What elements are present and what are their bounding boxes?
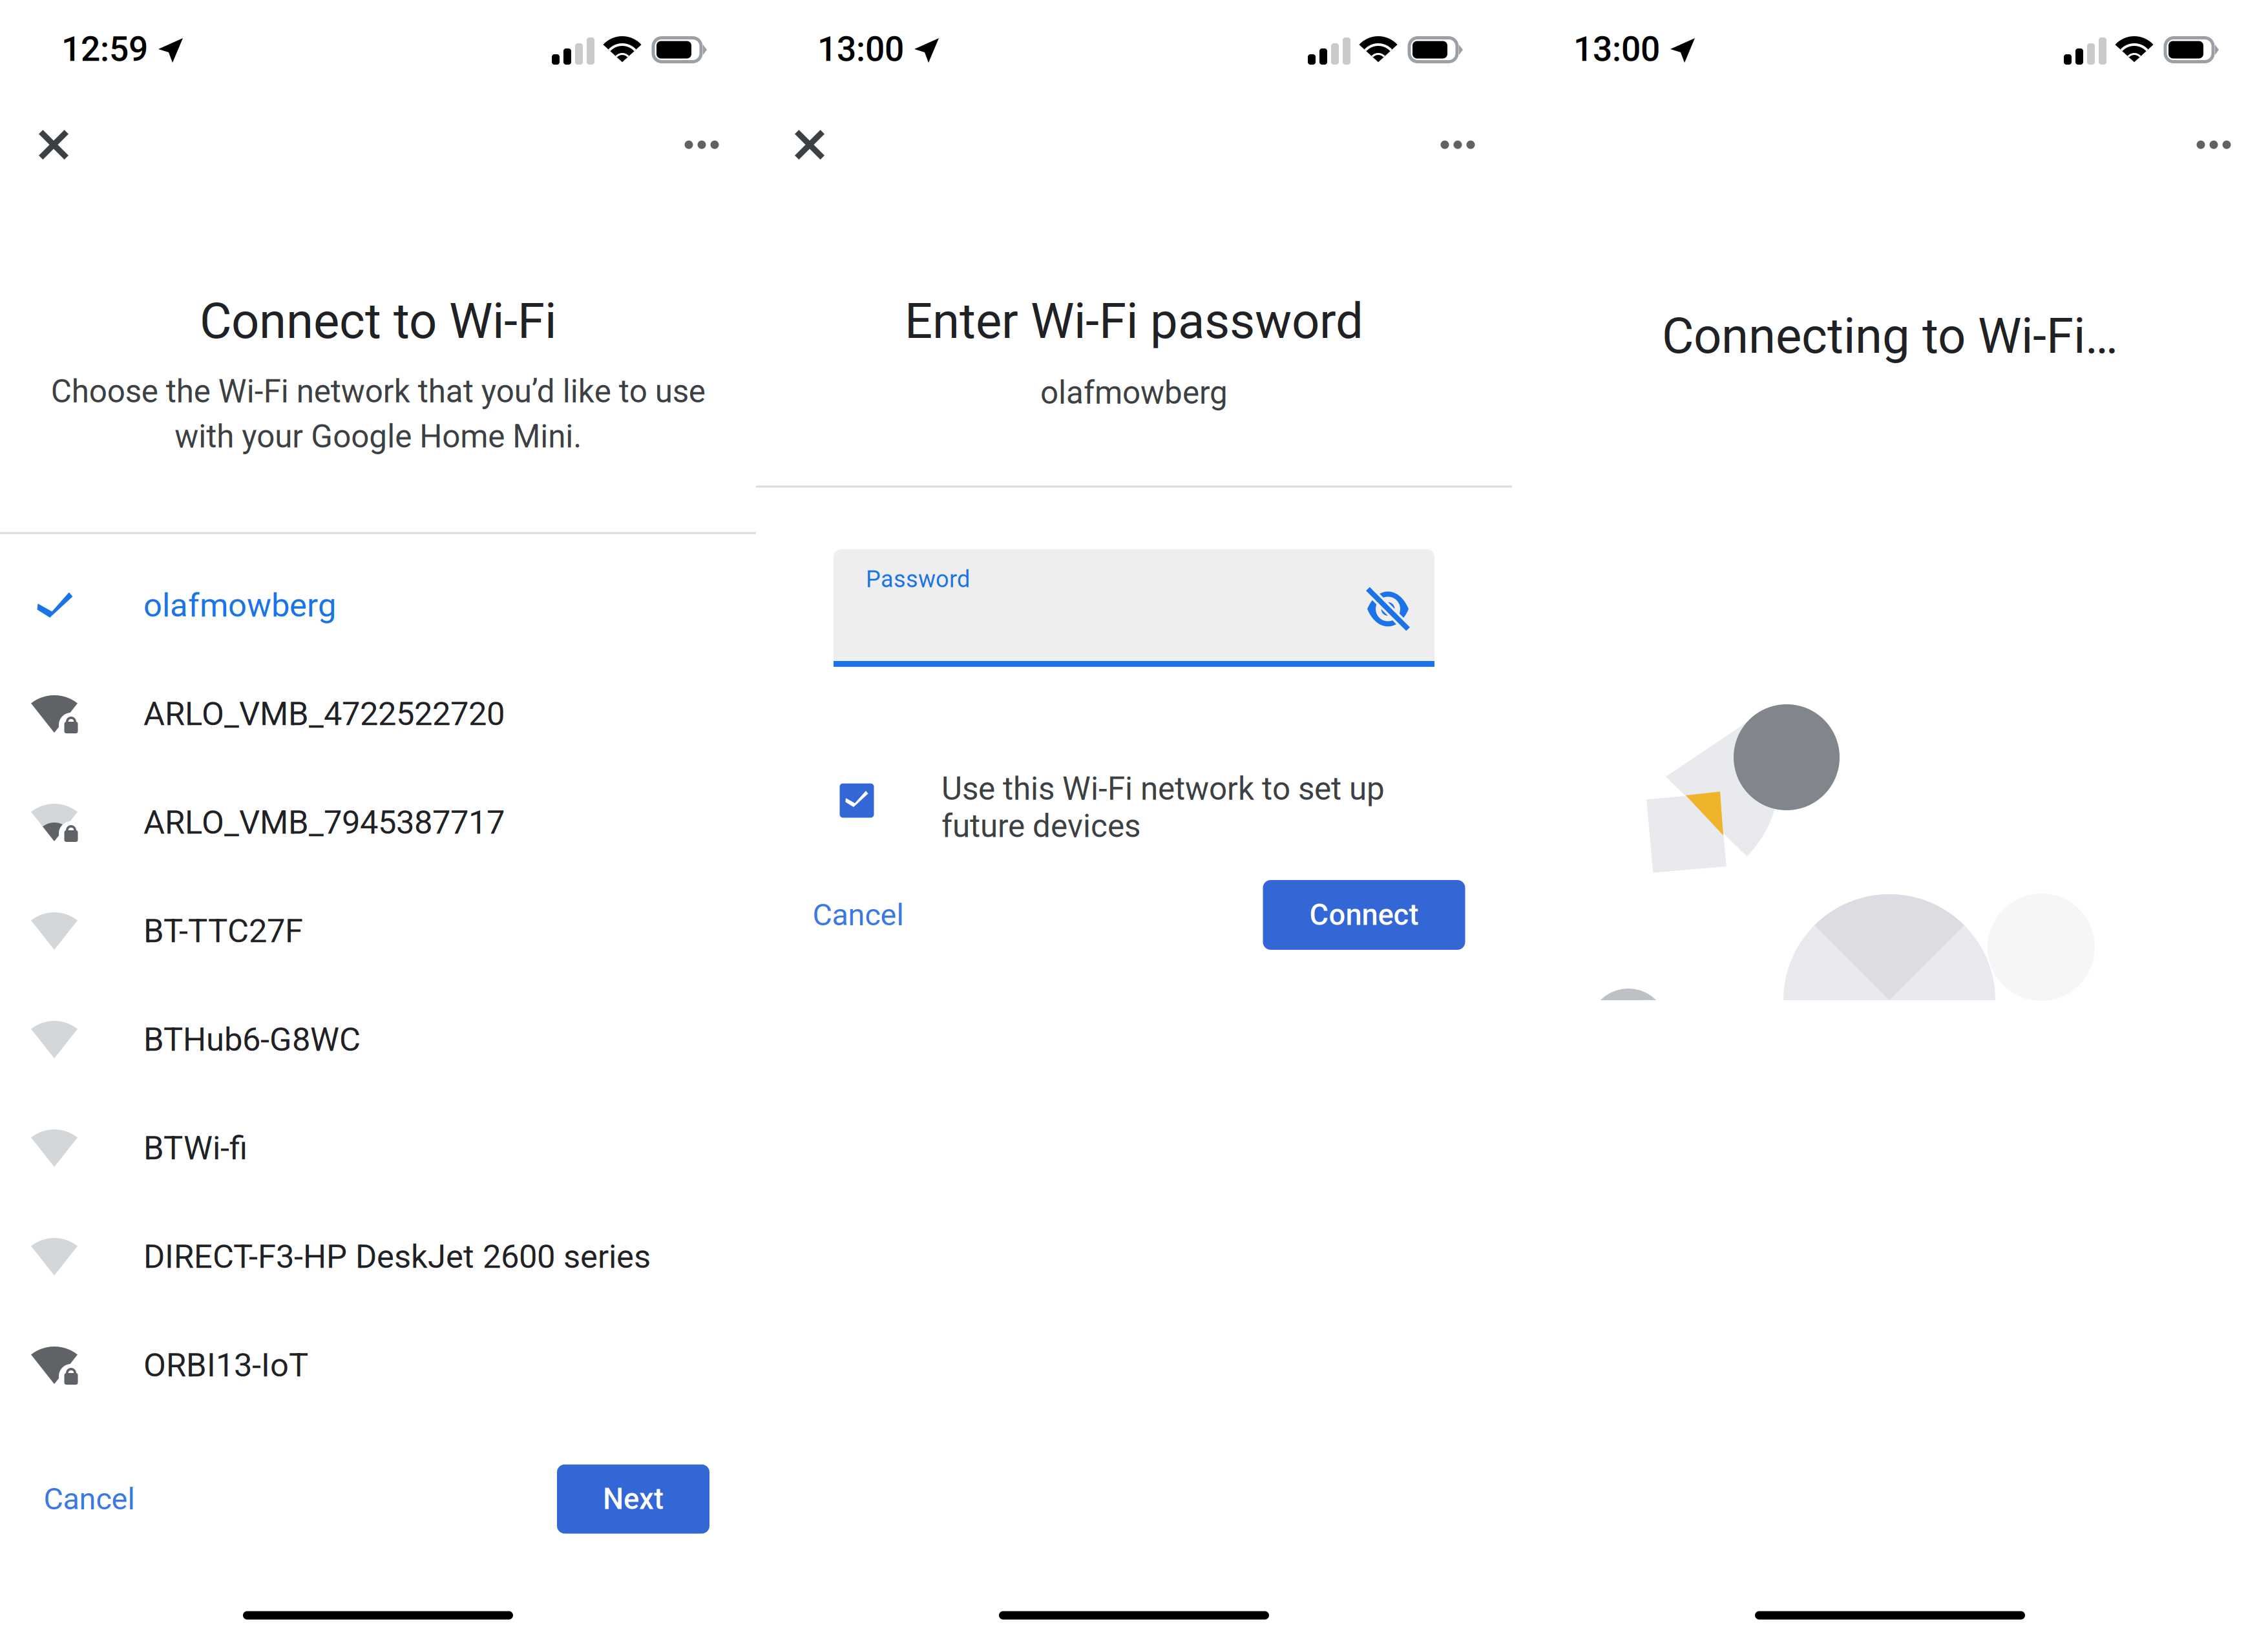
staticText: 13:00 (817, 29, 904, 69)
button[interactable]: ORBI13-IoT (0, 1310, 756, 1419)
staticText: olafmowberg (1040, 374, 1228, 412)
staticText: Cancel (44, 1481, 135, 1517)
button[interactable]: DIRECT-F3-HP DeskJet 2600 series (0, 1202, 756, 1310)
button[interactable]: BTWi-fi (0, 1093, 756, 1202)
staticText: Enter Wi-Fi password (905, 292, 1363, 350)
staticText: Connect (1309, 898, 1419, 932)
staticText: Choose the Wi-Fi network that you’d like… (51, 373, 705, 455)
button[interactable]: Close (791, 126, 828, 163)
staticText: ARLO_VMB_4722522720 (143, 695, 505, 733)
button[interactable]: More options (2197, 141, 2231, 149)
staticText: BT-TTC27F (143, 912, 303, 950)
button[interactable]: Close (35, 126, 72, 163)
button[interactable]: BTHub6-G8WC (0, 985, 756, 1093)
button[interactable]: ARLO_VMB_4722522720 (0, 659, 756, 768)
staticText: 12:59 (61, 29, 148, 69)
staticText: Connecting to Wi-Fi… (1662, 307, 2118, 365)
button[interactable]: Connect (1263, 880, 1465, 950)
staticText: olafmowberg (143, 586, 336, 625)
button[interactable]: Cancel (800, 883, 916, 947)
button[interactable]: Next (557, 1464, 709, 1534)
staticText: Cancel (813, 897, 904, 933)
staticText: 13:00 (1573, 29, 1660, 69)
staticText: DIRECT-F3-HP DeskJet 2600 series (143, 1238, 651, 1276)
staticText: Use this Wi-Fi network to set up future … (941, 770, 1385, 845)
staticText: Password (866, 566, 970, 593)
button[interactable]: olafmowberg (0, 551, 756, 659)
button[interactable]: Use this Wi-Fi network to set up future … (834, 771, 1415, 849)
staticText: BTWi-fi (143, 1129, 247, 1167)
button[interactable]: More options (685, 141, 719, 149)
button[interactable]: Cancel (31, 1467, 147, 1531)
staticText: BTHub6-G8WC (143, 1020, 361, 1059)
staticText: ARLO_VMB_7945387717 (143, 803, 505, 842)
button[interactable]: More options (1441, 141, 1475, 149)
button[interactable]: BT-TTC27F (0, 876, 756, 985)
staticText: ORBI13-IoT (143, 1346, 308, 1384)
staticText: Next (603, 1482, 664, 1516)
button[interactable]: ARLO_VMB_7945387717 (0, 768, 756, 876)
staticText: Connect to Wi-Fi (200, 292, 556, 350)
button[interactable]: Show password (1365, 582, 1411, 635)
